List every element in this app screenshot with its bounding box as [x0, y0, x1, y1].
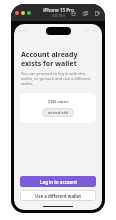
- staticText: Use a different wallet: [35, 193, 81, 199]
- button[interactable]: Home: [69, 9, 77, 17]
- button[interactable]: Use a different wallet: [20, 190, 96, 201]
- button[interactable]: Minimize: [21, 11, 25, 15]
- button[interactable]: ENS name: [20, 93, 96, 123]
- button[interactable]: Log in to account: [20, 176, 96, 187]
- staticText: avtvsd.eth: [48, 110, 68, 115]
- button[interactable]: Zoom: [27, 11, 31, 15]
- staticText: iOS 18.0: [52, 13, 65, 18]
- staticText: ENS name: [48, 99, 69, 105]
- button[interactable]: Record: [93, 9, 101, 17]
- staticText: iPhone 15 Pro: [43, 7, 74, 13]
- staticText: 9:41: [19, 28, 27, 33]
- staticText: You can proceed to log in with this wall…: [21, 71, 95, 86]
- button[interactable]: Close: [15, 11, 19, 15]
- button[interactable]: Screenshot: [81, 9, 89, 17]
- staticText: Account already exists for wallet: [21, 50, 95, 68]
- staticText: Log in to account: [40, 179, 77, 185]
